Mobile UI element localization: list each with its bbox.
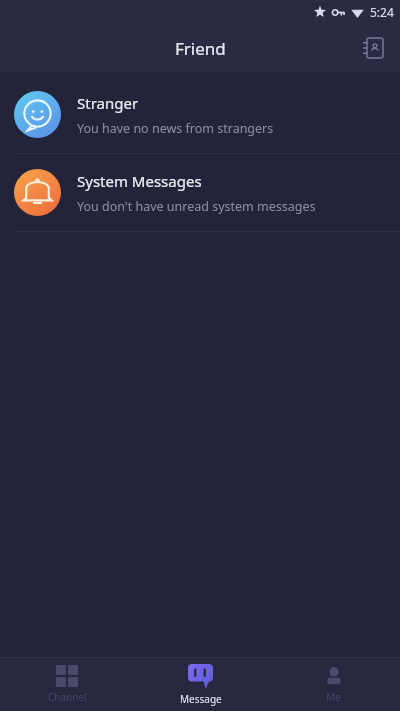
button[interactable]: Stranger: [0, 76, 400, 153]
staticText: You don't have unread system messages: [77, 198, 316, 215]
staticText: You have no news from strangers: [77, 120, 274, 137]
staticText: Stranger: [77, 93, 139, 113]
button[interactable]: Contacts: [356, 31, 390, 65]
staticText: 5:24: [370, 4, 394, 20]
staticText: Channel: [48, 690, 87, 704]
staticText: Message: [180, 692, 222, 706]
staticText: System Messages: [77, 171, 202, 191]
button[interactable]: System Messages: [0, 154, 400, 231]
button[interactable]: Message: [134, 658, 267, 711]
staticText: Me: [326, 690, 341, 704]
staticText: Friend: [175, 37, 226, 60]
button[interactable]: Me: [267, 658, 400, 711]
button[interactable]: Channel: [0, 658, 134, 711]
